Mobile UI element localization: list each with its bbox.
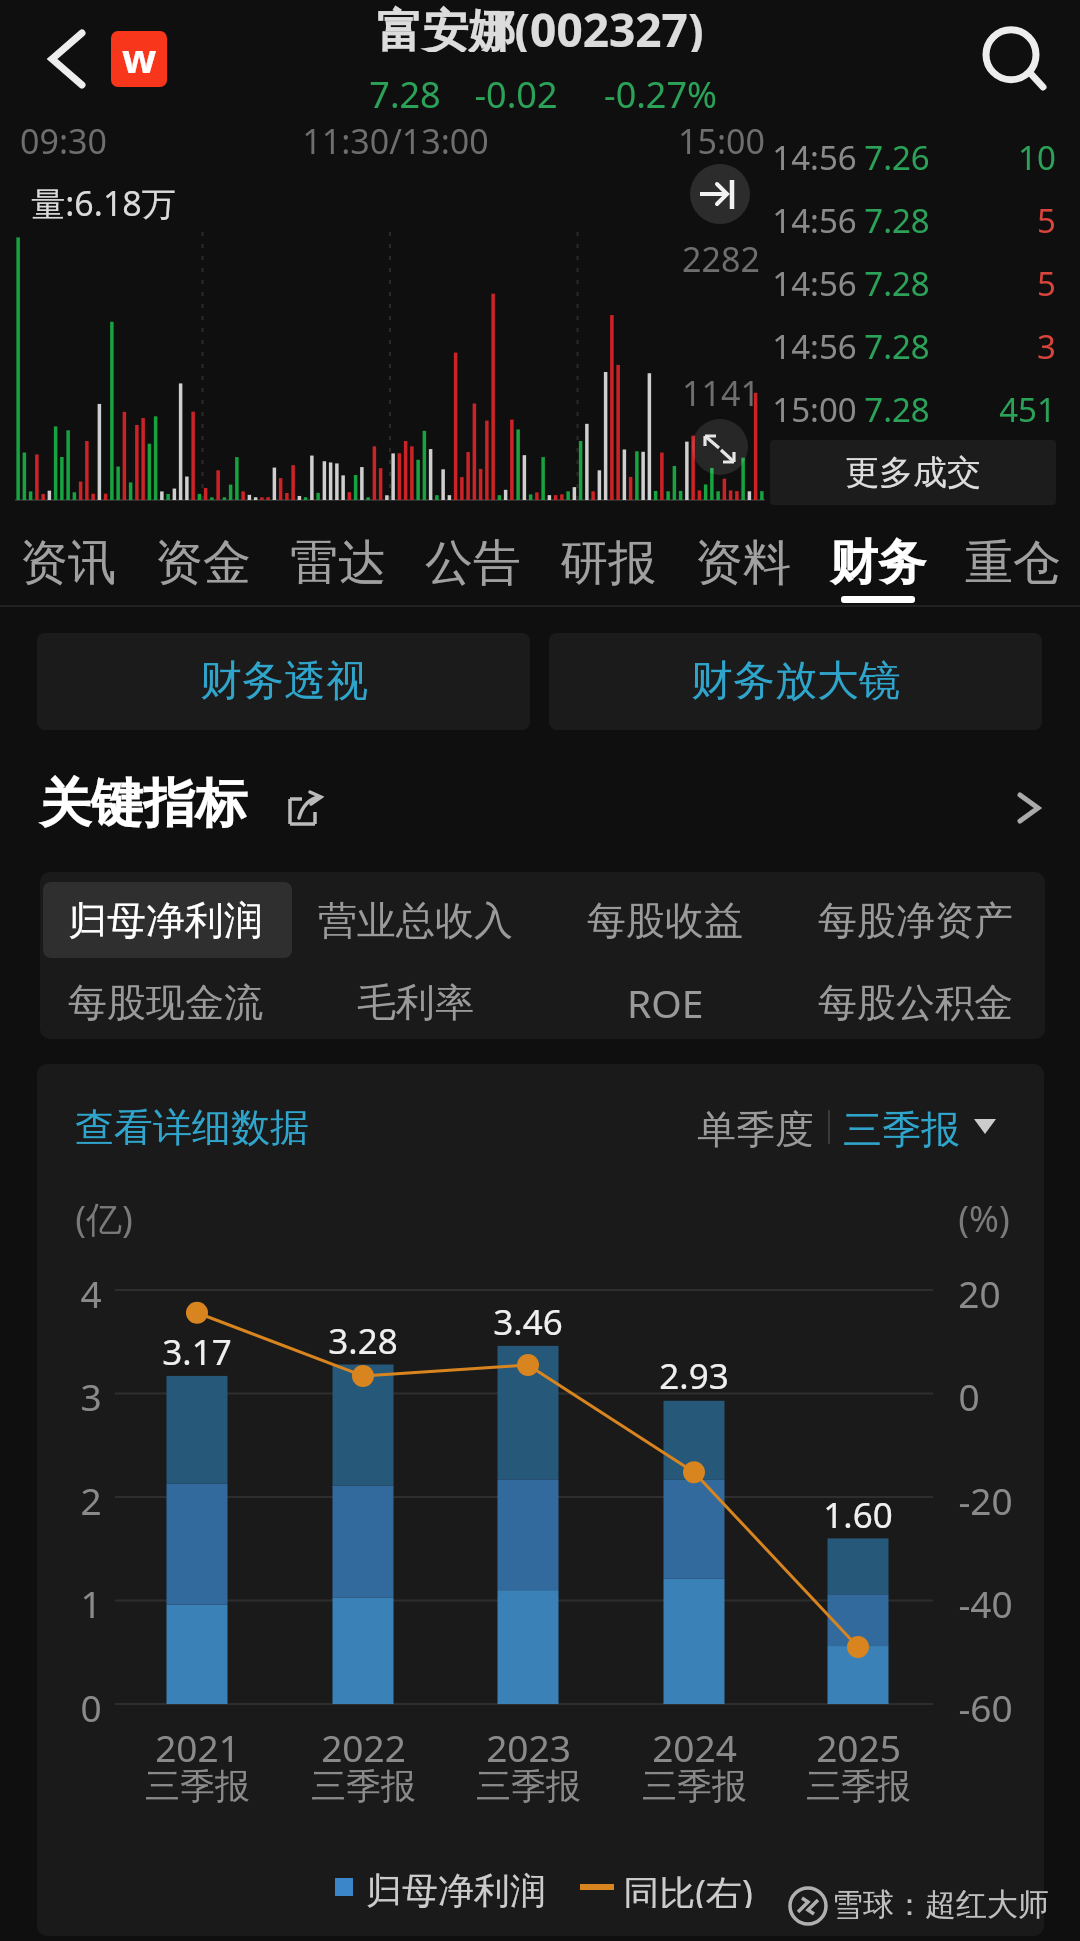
button[interactable]: 财务放大镜 (549, 633, 1042, 730)
button[interactable]: 每股收益 (540, 882, 790, 958)
staticText: 11:30/13:00 (302, 118, 489, 158)
staticText: 财务透视 (200, 655, 368, 708)
staticText: 研报 (560, 533, 656, 593)
button[interactable]: 查看详细数据 (75, 1100, 315, 1154)
button[interactable]: 更多成交 (770, 440, 1056, 505)
button[interactable]: 重仓 (945, 515, 1080, 611)
staticText: (%) (958, 1194, 1010, 1238)
staticText: -40 (958, 1578, 1013, 1622)
button[interactable]: 关键指标 (0, 765, 1080, 843)
button[interactable]: 研报 (540, 515, 675, 611)
staticText: 14:56 (772, 135, 857, 179)
staticText: 资金 (155, 533, 251, 593)
staticText: 2024 (652, 1722, 737, 1762)
staticText: 公告 (425, 533, 521, 593)
staticText: 富安娜(002327) (376, 0, 704, 52)
staticText: 7.28 (864, 198, 930, 242)
staticText: 20 (958, 1268, 1001, 1312)
button[interactable]: Jump to end (690, 164, 750, 224)
button[interactable]: 单季度 (690, 1105, 820, 1149)
staticText: (亿) (75, 1194, 133, 1238)
staticText: 7.28 (864, 387, 930, 431)
staticText: 7.28 (369, 70, 441, 116)
staticText: -60 (958, 1682, 1013, 1726)
staticText: 09:30 (20, 118, 107, 158)
staticText: 营业总收入 (318, 896, 513, 945)
staticText: 0 (958, 1371, 980, 1415)
staticText: 资讯 (20, 533, 116, 593)
staticText: 5 (1037, 261, 1056, 305)
button[interactable]: Weibo (111, 31, 167, 87)
staticText: 5 (1037, 198, 1056, 242)
button[interactable]: 毛利率 (290, 964, 540, 1040)
staticText: 15:00 (772, 387, 857, 431)
staticText: 0 (80, 1682, 102, 1726)
button[interactable]: 三季报 (843, 1105, 1003, 1149)
staticText: 资料 (695, 533, 791, 593)
button[interactable]: 资讯 (0, 515, 135, 611)
staticText: 2021 (155, 1722, 240, 1762)
staticText: 重仓 (965, 533, 1061, 593)
staticText: ROE (627, 976, 704, 1029)
staticText: 三季报 (145, 1764, 250, 1804)
staticText: 同比(右) (623, 1868, 753, 1908)
button[interactable]: Share key indicators (275, 779, 335, 839)
staticText: 1 (80, 1578, 102, 1622)
staticText: 每股收益 (587, 896, 743, 945)
staticText: 2022 (321, 1722, 406, 1762)
staticText: 每股现金流 (68, 978, 263, 1027)
button[interactable]: 资金 (135, 515, 270, 611)
staticText: 归母净利润 (366, 1868, 546, 1908)
staticText: 7.28 (864, 261, 930, 305)
staticText: 三季报 (843, 1105, 960, 1149)
staticText: 2282 (682, 236, 760, 278)
staticText: 关键指标 (39, 771, 247, 837)
staticText: 查看详细数据 (75, 1103, 309, 1152)
staticText: -0.27% (604, 70, 717, 116)
staticText: 三季报 (311, 1764, 416, 1804)
button[interactable]: 每股现金流 (40, 964, 290, 1040)
button[interactable]: Back (28, 18, 108, 98)
staticText: 3.17 (162, 1328, 232, 1372)
button[interactable]: 雷达 (270, 515, 405, 611)
button[interactable]: 每股净资产 (790, 882, 1040, 958)
staticText: 7.26 (864, 135, 930, 179)
staticText: 财务 (830, 533, 926, 593)
staticText: -0.02 (474, 70, 558, 116)
staticText: 2023 (486, 1722, 571, 1762)
button[interactable]: 归母净利润 (40, 882, 290, 958)
button[interactable]: 财务透视 (37, 633, 530, 730)
staticText: 雷达 (290, 533, 386, 593)
staticText: 单季度 (697, 1105, 814, 1149)
staticText: 14:56 (772, 198, 857, 242)
staticText: 1141 (682, 370, 760, 412)
staticText: 3 (1037, 324, 1056, 368)
staticText: w (122, 31, 157, 84)
staticText: 每股公积金 (818, 978, 1013, 1027)
staticText: -20 (958, 1475, 1013, 1519)
staticText: 14:56 (772, 261, 857, 305)
button[interactable]: 公告 (405, 515, 540, 611)
staticText: 10 (1018, 135, 1056, 179)
button[interactable]: 营业总收入 (290, 882, 540, 958)
button[interactable]: 财务 (810, 515, 945, 611)
button[interactable]: Expand chart (692, 419, 748, 475)
staticText: 14:56 (772, 324, 857, 368)
staticText: 三季报 (476, 1764, 581, 1804)
button[interactable]: Search (975, 20, 1047, 92)
button[interactable]: 每股公积金 (790, 964, 1040, 1040)
staticText: 15:00 (678, 118, 765, 158)
staticText: 2025 (816, 1722, 901, 1762)
staticText: 4 (80, 1268, 102, 1312)
staticText: 7.28 (864, 324, 930, 368)
staticText: 2.93 (659, 1352, 729, 1396)
button[interactable]: 资料 (675, 515, 810, 611)
staticText: 雪球：超红大师 (832, 1885, 1049, 1924)
staticText: 量:6.18万 (31, 180, 176, 224)
staticText: 3.46 (493, 1298, 563, 1342)
staticText: 更多成交 (845, 451, 981, 494)
staticText: 三季报 (806, 1764, 911, 1804)
staticText: 每股净资产 (818, 896, 1013, 945)
button[interactable]: ROE (540, 964, 790, 1040)
staticText: 1.60 (823, 1491, 893, 1535)
